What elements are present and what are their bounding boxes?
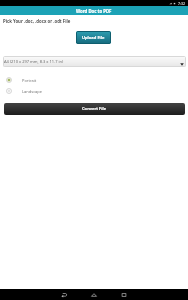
staticText: Word Doc to PDF [76,8,112,14]
staticText: Convert File [82,106,107,112]
button[interactable]: Convert File [4,103,185,115]
staticText: Upload File [82,35,105,41]
staticText: A4 (210 x 297 mm, 8.3 x 11.7 in) [4,59,64,64]
staticText: Portrait [22,78,37,83]
button[interactable]: Back [58,289,70,300]
staticText: 7:32 [178,1,186,6]
button[interactable]: Upload File [76,31,111,44]
button[interactable]: Recent apps [118,289,130,300]
staticText: Landscape [22,89,43,94]
button[interactable]: Home [88,289,100,300]
staticText: Pick Your .doc, .docx or .odt File [3,18,71,24]
button[interactable]: A4 (210 x 297 mm, 8.3 x 11.7 in) [3,56,186,67]
button[interactable]: Landscape [6,86,66,96]
button[interactable]: Portrait [6,75,66,85]
